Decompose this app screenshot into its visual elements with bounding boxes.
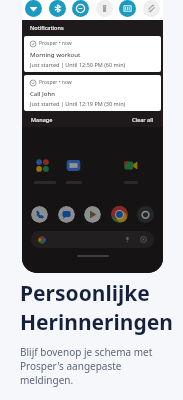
staticText: Blijf bovenop je schema met — [20, 345, 153, 359]
button[interactable]: Messages — [58, 206, 75, 223]
staticText: Morning workout — [30, 51, 81, 59]
staticText: Just started | Until 12:19 PM (30 min) — [30, 100, 126, 107]
button[interactable]: Prosper • now — [24, 36, 161, 72]
button[interactable]: Wi-Fi — [25, 0, 42, 17]
button[interactable]: Battery saver — [119, 0, 136, 17]
button[interactable]: Auto rotate — [143, 0, 160, 17]
staticText: Prosper • now — [39, 79, 72, 86]
staticText: Notifications — [30, 24, 64, 31]
button[interactable]: Chrome — [111, 206, 128, 223]
button[interactable]: Flashlight — [96, 0, 113, 17]
button[interactable]: Phone — [31, 206, 48, 223]
button[interactable]: Clear all — [131, 115, 155, 124]
button[interactable]: Play Store — [84, 206, 101, 223]
button[interactable] — [34, 157, 51, 174]
button[interactable] — [31, 231, 154, 248]
staticText: Herinneringen — [20, 308, 173, 337]
button[interactable] — [65, 157, 82, 174]
button[interactable]: Camera — [137, 206, 154, 223]
button[interactable]: Do not disturb — [72, 0, 89, 17]
button[interactable]: Prosper • now — [24, 75, 161, 111]
staticText: Prosper • now — [39, 40, 72, 47]
button[interactable] — [122, 157, 139, 174]
staticText: Prosper's aangepaste meldingen. — [20, 359, 175, 387]
button[interactable]: Bluetooth — [49, 0, 66, 17]
staticText: Just started | Until 12:50 PM (60 min) — [30, 61, 126, 68]
staticText: Manage — [31, 116, 53, 123]
staticText: Call John — [30, 90, 55, 98]
button[interactable]: Manage — [30, 115, 54, 124]
staticText: Persoonlijke — [20, 279, 150, 308]
staticText: Clear all — [132, 116, 154, 123]
